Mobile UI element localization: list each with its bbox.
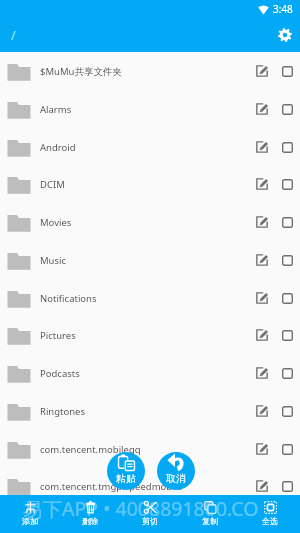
button[interactable]: Rename <box>253 326 271 344</box>
button[interactable]: Alarms <box>0 90 300 128</box>
staticText: Pictures <box>40 329 253 342</box>
button[interactable]: Rename <box>253 251 271 269</box>
button[interactable]: $MuMu共享文件夹 <box>0 52 300 90</box>
button[interactable]: Rename <box>253 62 271 80</box>
staticText: 3:48 <box>273 2 293 16</box>
button[interactable]: Notifications <box>0 279 300 317</box>
button[interactable]: Select <box>278 402 296 420</box>
button[interactable]: Select <box>278 213 296 231</box>
button[interactable]: Select <box>278 326 296 344</box>
staticText: Podcasts <box>40 367 253 380</box>
staticText: DCIM <box>40 178 253 191</box>
button[interactable]: com.tencent.tmgp.speedmobile <box>0 467 300 505</box>
button[interactable]: Select <box>278 251 296 269</box>
button[interactable]: Ringtones <box>0 392 300 430</box>
button[interactable]: Rename <box>253 440 271 458</box>
button[interactable]: Select <box>278 477 296 495</box>
button[interactable]: 取消 <box>157 452 195 490</box>
staticText: 复制 <box>202 516 218 526</box>
staticText: / <box>11 26 16 44</box>
staticText: Music <box>40 254 253 267</box>
button[interactable]: Rename <box>253 402 271 420</box>
staticText: 易下APP • 4008891800.CO <box>23 495 259 522</box>
button[interactable]: Settings <box>272 22 298 48</box>
staticText: 全选 <box>262 516 278 526</box>
button[interactable]: Rename <box>253 175 271 193</box>
button[interactable]: Rename <box>253 213 271 231</box>
button[interactable]: Rename <box>253 477 271 495</box>
button[interactable]: Select <box>278 62 296 80</box>
button[interactable]: Rename <box>253 100 271 118</box>
staticText: 粘贴 <box>116 472 136 485</box>
staticText: Movies <box>40 216 253 229</box>
button[interactable]: 全选 <box>240 495 300 533</box>
button[interactable]: Rename <box>253 289 271 307</box>
button[interactable]: Pictures <box>0 316 300 354</box>
button[interactable]: Music <box>0 241 300 279</box>
button[interactable]: Podcasts <box>0 354 300 392</box>
staticText: Ringtones <box>40 405 253 418</box>
button[interactable]: Select <box>278 364 296 382</box>
staticText: Android <box>40 141 253 154</box>
button[interactable]: DCIM <box>0 165 300 203</box>
staticText: $MuMu共享文件夹 <box>40 65 253 78</box>
staticText: Alarms <box>40 103 253 116</box>
button[interactable]: Rename <box>253 138 271 156</box>
button[interactable]: 复制 <box>180 495 240 533</box>
button[interactable]: Select <box>278 289 296 307</box>
button[interactable]: com.tencent.mobileqq <box>0 430 300 468</box>
button[interactable]: 粘贴 <box>107 452 145 490</box>
staticText: 删除 <box>82 516 98 526</box>
button[interactable]: 删除 <box>60 495 120 533</box>
button[interactable]: Select <box>278 440 296 458</box>
button[interactable]: 剪切 <box>120 495 180 533</box>
button[interactable]: Rename <box>253 364 271 382</box>
button[interactable]: Select <box>278 175 296 193</box>
staticText: Notifications <box>40 292 253 305</box>
staticText: com.tencent.tmgp.speedmobile <box>40 480 253 493</box>
button[interactable]: Select <box>278 138 296 156</box>
staticText: 添加 <box>22 516 38 526</box>
staticText: 取消 <box>166 472 186 485</box>
button[interactable]: 添加 <box>0 495 60 533</box>
staticText: 剪切 <box>142 516 158 526</box>
button[interactable]: Android <box>0 128 300 166</box>
button[interactable]: Movies <box>0 203 300 241</box>
button[interactable]: Select <box>278 100 296 118</box>
staticText: com.tencent.mobileqq <box>40 443 253 456</box>
